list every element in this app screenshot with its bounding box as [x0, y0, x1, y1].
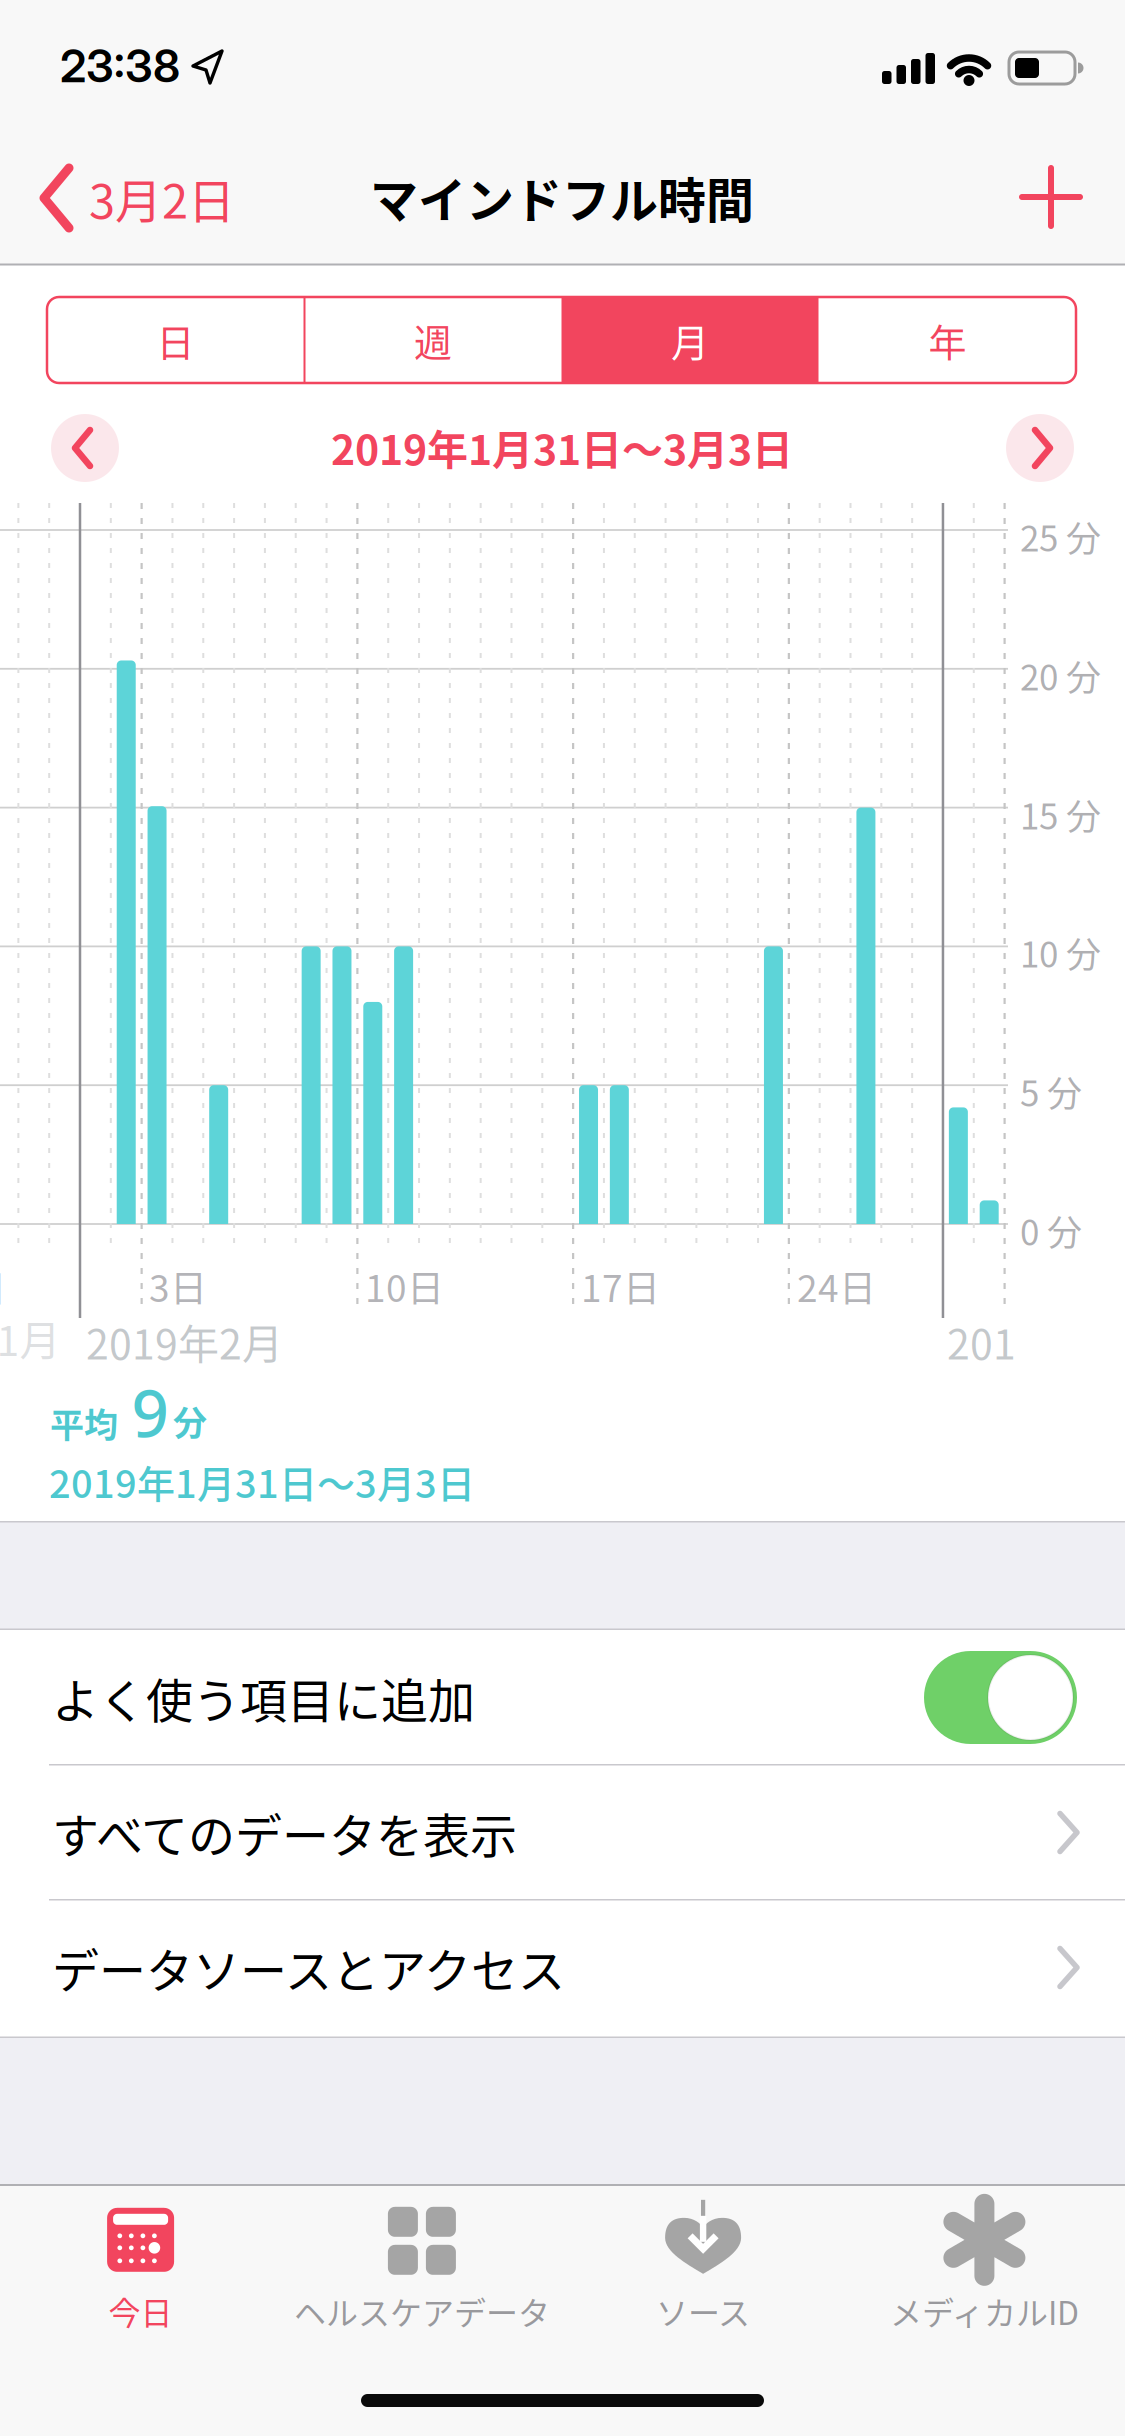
button[interactable]: 前の期間	[51, 414, 119, 482]
staticText: 日	[0, 1259, 6, 1313]
staticText: 今日	[109, 2288, 173, 2334]
staticText: 10 分	[1020, 927, 1101, 978]
button[interactable]: 今日	[1, 2184, 281, 2350]
staticText: メディカルID	[890, 2288, 1079, 2334]
staticText: すべてのデータを表示	[52, 1798, 517, 1867]
button[interactable]: 追加	[1022, 168, 1080, 226]
staticText: 3月2日	[89, 164, 235, 232]
staticText: 3日	[149, 1259, 207, 1313]
button[interactable]: 次の期間	[1006, 414, 1074, 482]
button[interactable]: 月	[562, 297, 819, 383]
button[interactable]: ソース	[563, 2184, 843, 2350]
staticText: ソース	[656, 2288, 750, 2334]
staticText: 23:38	[60, 39, 180, 93]
button[interactable]: メディカルID	[844, 2184, 1124, 2350]
button[interactable]: 週	[304, 297, 561, 383]
staticText: 週	[414, 312, 452, 367]
staticText: 2019年2月	[86, 1312, 283, 1371]
button[interactable]: 3月2日	[39, 164, 235, 232]
staticText: ヘルスケアデータ	[294, 2288, 550, 2334]
button[interactable]: 日	[47, 297, 304, 383]
staticText: 201	[947, 1312, 1016, 1371]
staticText: 5 分	[1020, 1066, 1082, 1117]
button[interactable]: 年	[819, 297, 1076, 383]
staticText: 17日	[581, 1259, 660, 1313]
staticText: 2019年1月31日～3月3日	[49, 1454, 475, 1509]
staticText: 月	[671, 312, 709, 367]
button[interactable]: ヘルスケアデータ	[282, 2184, 562, 2350]
button[interactable]: よく使う項目に追加	[924, 1651, 1077, 1744]
staticText: データソースとアクセス	[52, 1933, 565, 2002]
button[interactable]: データソースとアクセス	[0, 1900, 1125, 2035]
staticText: 10日	[365, 1259, 444, 1313]
staticText: 日	[157, 312, 195, 367]
staticText: 15 分	[1020, 789, 1101, 840]
staticText: 年	[928, 312, 966, 367]
staticText: 分	[173, 1396, 207, 1446]
staticText: 25 分	[1020, 511, 1101, 562]
staticText: 2019年1月31日～3月3日	[331, 417, 793, 477]
button[interactable]: すべてのデータを表示	[0, 1765, 1125, 1900]
staticText: 24日	[797, 1259, 876, 1313]
staticText: 0 分	[1020, 1205, 1082, 1256]
staticText: 2019年1月	[0, 1308, 60, 1368]
staticText: 20 分	[1020, 650, 1101, 701]
staticText: マインドフル時間	[370, 162, 754, 232]
staticText: 9	[131, 1369, 168, 1455]
staticText: 平均	[50, 1398, 118, 1448]
staticText: よく使う項目に追加	[52, 1663, 475, 1732]
